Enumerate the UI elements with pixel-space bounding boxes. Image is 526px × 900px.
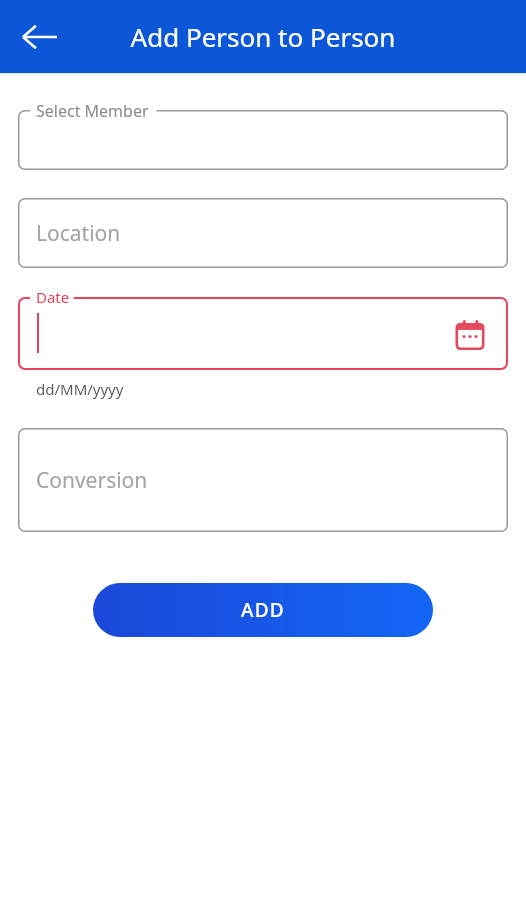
button[interactable]: Conversion [18, 428, 508, 532]
staticText: Select Member [36, 100, 149, 122]
staticText: Add Person to Person [0, 19, 526, 54]
button[interactable]: Back [10, 7, 70, 67]
staticText: dd/MM/yyyy [36, 379, 124, 399]
staticText: Conversion [36, 466, 148, 495]
button[interactable]: Pick date [448, 313, 492, 357]
staticText: Date [36, 287, 70, 307]
button[interactable]: ADD [93, 583, 433, 637]
button[interactable]: Select Member [18, 110, 508, 170]
staticText: Location [36, 219, 121, 248]
button[interactable]: Location [18, 198, 508, 268]
staticText: ADD [241, 597, 285, 623]
button[interactable]: Date [18, 297, 508, 370]
